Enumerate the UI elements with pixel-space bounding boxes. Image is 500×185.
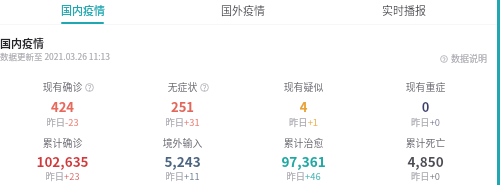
staticText: 0 bbox=[365, 97, 486, 116]
staticText: 现有确诊 bbox=[2, 80, 123, 94]
staticText: 251 bbox=[122, 97, 243, 116]
staticText: 昨日+23 bbox=[2, 169, 123, 182]
staticText: 实时播报 bbox=[365, 2, 443, 18]
staticText: ? bbox=[440, 54, 448, 62]
staticText: 昨日+11 bbox=[122, 169, 243, 182]
staticText: 累计死亡 bbox=[365, 136, 486, 150]
staticText: 国外疫情 bbox=[204, 2, 282, 18]
button[interactable]: 现有疑似 bbox=[243, 80, 364, 126]
other: 说明 bbox=[85, 83, 94, 92]
button[interactable]: 国内疫情 bbox=[44, 0, 122, 26]
button[interactable]: 国外疫情 bbox=[204, 0, 282, 26]
button[interactable]: 无症状 bbox=[122, 80, 243, 126]
staticText: 累计治愈 bbox=[243, 136, 364, 150]
button[interactable]: 境外输入 bbox=[122, 136, 243, 182]
staticText: 昨日+1 bbox=[243, 115, 364, 128]
button[interactable]: 累计治愈 bbox=[243, 136, 364, 182]
staticText: 累计确诊 bbox=[2, 136, 123, 150]
staticText: 现有重症 bbox=[365, 80, 486, 94]
staticText: ? bbox=[85, 82, 94, 91]
staticText: 昨日+46 bbox=[243, 169, 364, 182]
staticText: 现有疑似 bbox=[243, 80, 364, 94]
staticText: 97,361 bbox=[243, 151, 364, 171]
staticText: 4 bbox=[243, 97, 364, 116]
staticText: 4,850 bbox=[365, 151, 486, 171]
button[interactable]: 累计确诊 bbox=[2, 136, 123, 182]
staticText: 数据说明 bbox=[451, 52, 488, 65]
staticText: 国内疫情 bbox=[44, 2, 122, 18]
button[interactable]: 现有确诊 bbox=[2, 80, 123, 126]
button[interactable]: 现有重症 bbox=[365, 80, 486, 126]
staticText: 昨日+0 bbox=[365, 115, 486, 128]
staticText: 昨日-23 bbox=[2, 115, 123, 128]
staticText: 5,243 bbox=[122, 151, 243, 171]
staticText: 昨日+0 bbox=[365, 169, 486, 182]
staticText: 数据更新至 2021.03.26 11:13 bbox=[0, 50, 111, 62]
staticText: 424 bbox=[2, 97, 123, 116]
staticText: 国内疫情 bbox=[0, 35, 44, 51]
other: 说明 bbox=[200, 83, 209, 92]
staticText: ? bbox=[200, 82, 209, 91]
button[interactable]: 实时播报 bbox=[365, 0, 443, 26]
button[interactable]: 累计死亡 bbox=[365, 136, 486, 182]
staticText: 境外输入 bbox=[122, 136, 243, 150]
staticText: 102,635 bbox=[2, 151, 123, 171]
button[interactable]: ? bbox=[440, 52, 488, 65]
staticText: 无症状 bbox=[122, 80, 243, 94]
staticText: 昨日+31 bbox=[122, 115, 243, 128]
